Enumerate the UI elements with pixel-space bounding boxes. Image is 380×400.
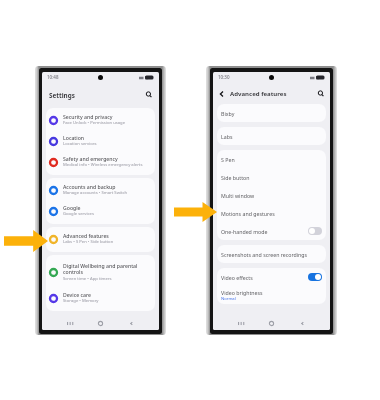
staticText: Multi window (221, 192, 255, 199)
staticText: Google services (63, 211, 94, 217)
staticText: Motions and gestures (221, 210, 275, 217)
staticText: Medical info • Wireless emergency alerts (63, 162, 143, 168)
button[interactable]: Device care (46, 288, 155, 309)
button[interactable]: Advanced features (46, 229, 155, 250)
staticText: Security and privacy (63, 113, 113, 120)
staticText: Normal (221, 296, 236, 302)
button[interactable]: Search (144, 90, 154, 100)
staticText: Accounts and backup (63, 183, 116, 190)
staticText: S Pen (221, 156, 235, 163)
staticText: Advanced features (63, 232, 109, 239)
button[interactable]: One-handed mode (217, 222, 326, 240)
button[interactable]: Bixby (217, 104, 326, 122)
button[interactable]: Video effects (217, 268, 326, 286)
button[interactable]: Accounts and backup (46, 180, 155, 201)
button[interactable]: Multi window (217, 186, 326, 204)
staticText: Bixby (221, 110, 235, 117)
button[interactable]: S Pen (217, 150, 326, 168)
staticText: Manage accounts • Smart Switch (63, 190, 128, 196)
button[interactable]: Video brightness (217, 286, 326, 304)
staticText: Video effects (221, 274, 253, 281)
button[interactable]: Labs (217, 127, 326, 145)
button[interactable]: Screenshots and screen recordings (217, 245, 326, 263)
staticText: Screenshots and screen recordings (221, 251, 308, 258)
staticText: Digital Wellbeing and parental controls (63, 262, 138, 276)
staticText: Google (63, 204, 81, 211)
staticText: Advanced features (230, 90, 287, 98)
staticText: Storage • Memory (63, 298, 99, 304)
button[interactable]: Search (316, 89, 326, 99)
button[interactable]: Digital Wellbeing and parental controls (46, 257, 155, 288)
staticText: Labs • S Pen • Side button (63, 239, 114, 245)
staticText: Video brightness (221, 289, 263, 296)
button[interactable]: Toggle (308, 273, 322, 281)
staticText: Location (63, 134, 85, 141)
staticText: Screen time • App timers (63, 276, 112, 282)
staticText: Side button (221, 174, 250, 181)
staticText: 10:30 (218, 74, 230, 80)
staticText: 10:48 (47, 74, 59, 80)
button[interactable]: Google (46, 201, 155, 222)
button[interactable]: Safety and emergency (46, 152, 155, 173)
button[interactable]: Side button (217, 168, 326, 186)
staticText: Face Unlock • Permission usage (63, 120, 126, 126)
staticText: Device care (63, 291, 92, 298)
button[interactable]: Location (46, 131, 155, 152)
staticText: One-handed mode (221, 228, 268, 235)
staticText: Location services (63, 141, 97, 147)
button[interactable]: Toggle (308, 227, 322, 235)
button[interactable]: Security and privacy (46, 110, 155, 131)
staticText: Labs (221, 133, 233, 140)
button[interactable]: Motions and gestures (217, 204, 326, 222)
staticText: Safety and emergency (63, 155, 118, 162)
button[interactable]: Back (217, 89, 227, 99)
staticText: Settings (49, 91, 75, 100)
